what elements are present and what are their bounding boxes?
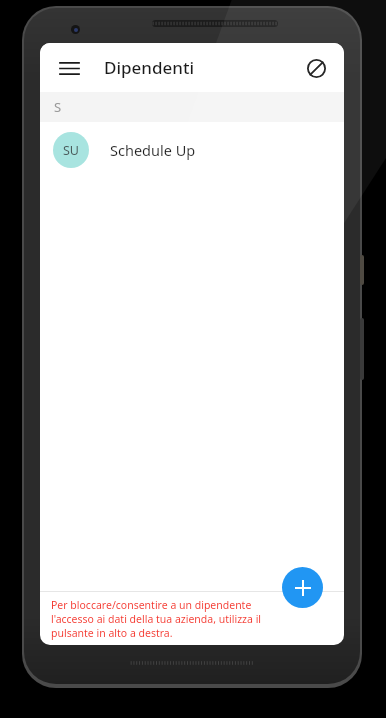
button[interactable]: SU (40, 122, 344, 178)
staticText: Schedule Up (110, 140, 196, 160)
staticText: Per bloccare/consentire a un dipendente … (51, 598, 269, 640)
button[interactable]: Block or allow employee (294, 46, 338, 90)
staticText: Dipendenti (104, 56, 195, 79)
staticText: S (54, 98, 62, 116)
staticText: SU (63, 142, 80, 159)
button[interactable]: Open navigation menu (47, 46, 91, 90)
button[interactable]: Add employee (282, 567, 323, 608)
